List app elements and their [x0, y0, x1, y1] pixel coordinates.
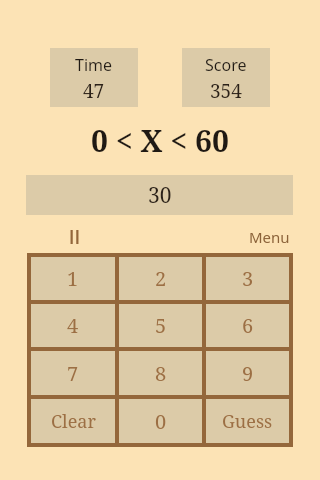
staticText: Score [205, 54, 247, 76]
button[interactable]: Menu [246, 225, 293, 249]
button[interactable]: 3 [206, 257, 289, 300]
staticText: 5 [155, 312, 167, 339]
button[interactable]: 1 [31, 257, 115, 300]
staticText: 6 [242, 312, 254, 339]
staticText: Clear [51, 409, 96, 434]
button[interactable]: Guess [206, 399, 289, 443]
staticText: 2 [155, 265, 167, 292]
staticText: 3 [242, 265, 254, 292]
staticText: 0 < X < 60 [91, 120, 229, 161]
staticText: 9 [242, 360, 254, 387]
button[interactable]: Time [50, 48, 138, 107]
button[interactable]: 0 [119, 399, 202, 443]
button[interactable]: 30 [26, 175, 293, 215]
staticText: Time [75, 54, 113, 76]
button[interactable]: 9 [206, 351, 289, 395]
button[interactable]: 8 [119, 351, 202, 395]
staticText: 0 [155, 408, 167, 435]
staticText: 8 [155, 360, 167, 387]
staticText: 7 [67, 360, 79, 387]
staticText: 1 [67, 265, 79, 292]
button[interactable]: 2 [119, 257, 202, 300]
staticText: Menu [249, 227, 290, 247]
staticText: 30 [148, 181, 172, 210]
staticText: 4 [67, 312, 79, 339]
staticText: 47 [83, 78, 105, 104]
button[interactable]: Pause [60, 225, 88, 249]
button[interactable]: 6 [206, 304, 289, 347]
button[interactable]: 7 [31, 351, 115, 395]
staticText: 354 [210, 78, 242, 104]
button[interactable]: Score [182, 48, 270, 107]
button[interactable]: Clear [31, 399, 115, 443]
button[interactable]: 4 [31, 304, 115, 347]
button[interactable]: 5 [119, 304, 202, 347]
staticText: Guess [222, 409, 273, 434]
